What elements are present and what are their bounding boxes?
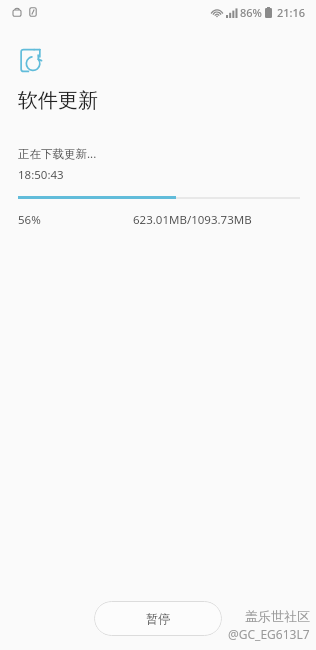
staticText: 56% [18,212,41,228]
staticText: 软件更新 [18,88,98,113]
staticText: 正在下载更新... [18,146,97,162]
staticText: 18:50:43 [18,167,64,183]
staticText: @GC_EG613L7 [228,626,310,642]
staticText: 86% [240,5,262,20]
staticText: 21:16 [277,5,306,20]
staticText: 623.01MB/1093.73MB [133,212,252,228]
button[interactable]: 暂停 [94,601,222,636]
staticText: 暂停 [146,611,170,626]
staticText: 盖乐世社区 [245,608,310,624]
